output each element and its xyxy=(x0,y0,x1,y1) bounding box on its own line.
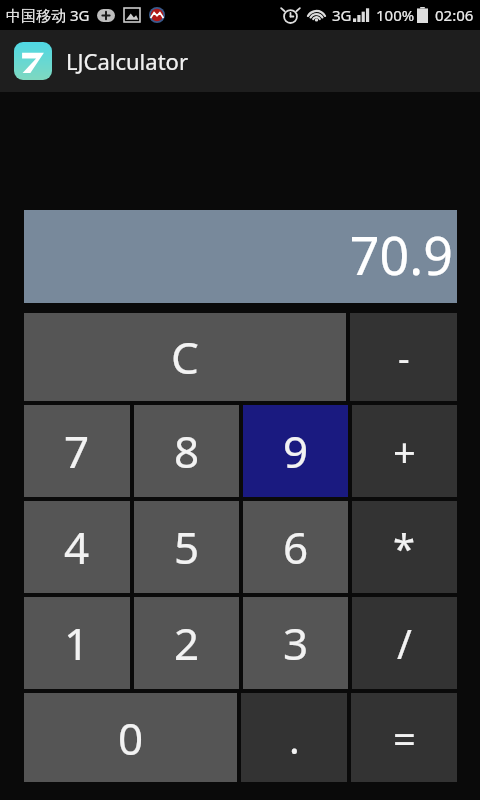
staticText: 3 xyxy=(283,613,309,673)
staticText: 3G xyxy=(332,5,352,25)
staticText: 中国移动 3G xyxy=(6,5,90,25)
staticText: 5 xyxy=(174,517,200,577)
staticText: - xyxy=(398,333,410,382)
button[interactable]: 5 xyxy=(134,501,239,593)
button[interactable]: 2 xyxy=(134,597,239,689)
staticText: 70.9 xyxy=(349,219,453,290)
button[interactable]: 9 xyxy=(243,405,348,497)
staticText: C xyxy=(171,327,199,387)
button[interactable]: . xyxy=(241,693,347,782)
button[interactable]: C xyxy=(24,313,346,401)
staticText: / xyxy=(397,616,412,670)
staticText: 0 xyxy=(118,708,144,768)
staticText: = xyxy=(393,711,416,765)
staticText: . xyxy=(289,711,300,765)
button[interactable]: 7 xyxy=(24,405,130,497)
staticText: 8 xyxy=(174,421,200,481)
button[interactable]: 1 xyxy=(24,597,130,689)
staticText: * xyxy=(393,520,416,574)
staticText: 100% xyxy=(376,5,415,25)
staticText: LJCalculator xyxy=(66,46,188,76)
staticText: 9 xyxy=(283,421,309,481)
staticText: 2 xyxy=(174,613,200,673)
button[interactable]: 6 xyxy=(243,501,348,593)
staticText: + xyxy=(393,424,416,478)
staticText: 6 xyxy=(283,517,309,577)
staticText: 02:06 xyxy=(435,5,474,25)
button[interactable]: = xyxy=(351,693,457,782)
button[interactable]: 4 xyxy=(24,501,130,593)
button[interactable]: 8 xyxy=(134,405,239,497)
staticText: 4 xyxy=(64,517,90,577)
button[interactable]: 3 xyxy=(243,597,348,689)
button[interactable]: + xyxy=(352,405,457,497)
staticText: 7 xyxy=(64,421,90,481)
button[interactable]: 0 xyxy=(24,693,237,782)
button[interactable]: * xyxy=(352,501,457,593)
button[interactable]: / xyxy=(352,597,457,689)
staticText: 1 xyxy=(64,613,90,673)
button[interactable]: - xyxy=(350,313,457,401)
